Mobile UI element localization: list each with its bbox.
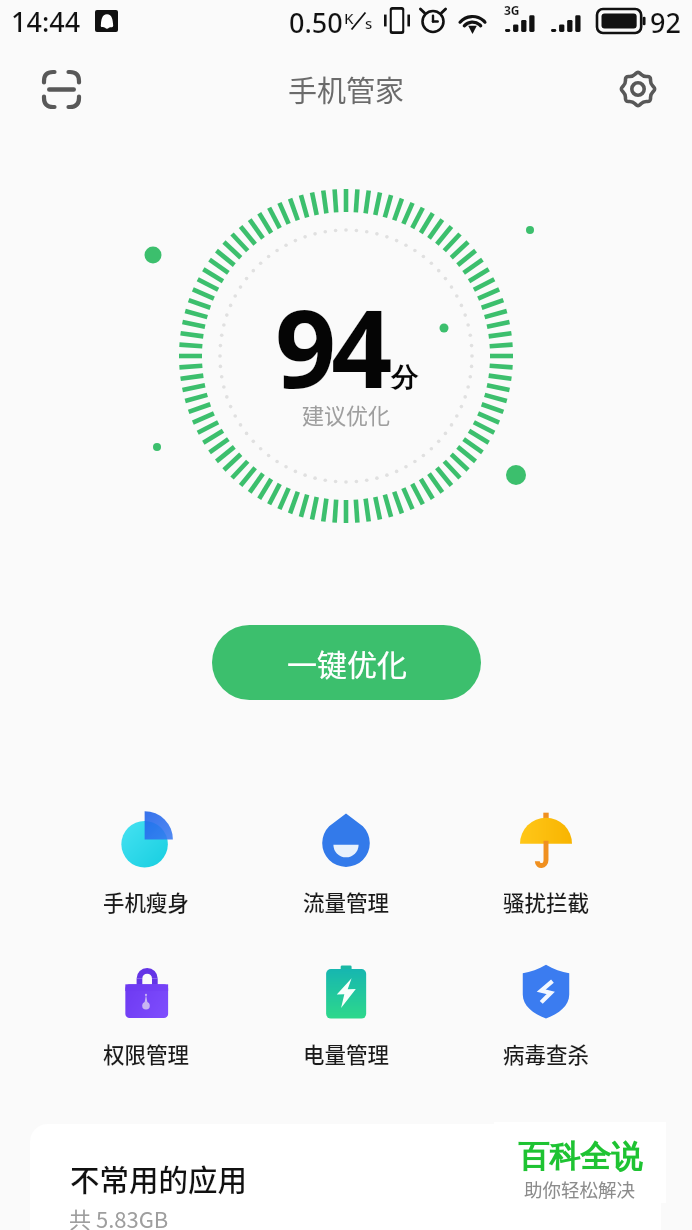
staticText: 权限管理 bbox=[103, 1038, 190, 1069]
staticText: 病毒查杀 bbox=[503, 1038, 590, 1069]
staticText: K bbox=[344, 8, 354, 28]
button[interactable]: 病毒查杀 bbox=[446, 964, 646, 1069]
staticText: 14:44 bbox=[11, 3, 81, 40]
button[interactable]: 一键优化 bbox=[212, 625, 481, 700]
button[interactable]: 权限管理 bbox=[46, 964, 246, 1069]
button[interactable]: 手机瘦身 bbox=[46, 812, 246, 917]
staticText: 电量管理 bbox=[303, 1038, 390, 1069]
staticText: 分 bbox=[391, 361, 418, 395]
staticText: 94 bbox=[275, 274, 388, 420]
button[interactable]: 百科全说 bbox=[494, 1122, 666, 1203]
staticText: 百科全说 bbox=[518, 1137, 642, 1176]
staticText: 手机瘦身 bbox=[103, 886, 190, 917]
button[interactable]: Scan bbox=[34, 62, 89, 117]
button[interactable]: 不常用的应用 bbox=[30, 1124, 661, 1230]
staticText: 骚扰拦截 bbox=[503, 886, 590, 917]
staticText: 92 bbox=[650, 4, 681, 41]
staticText: 0.50 bbox=[289, 4, 343, 41]
staticText: 流量管理 bbox=[303, 886, 390, 917]
button[interactable]: 电量管理 bbox=[246, 964, 446, 1069]
button[interactable]: Settings bbox=[611, 62, 665, 116]
staticText: 3G bbox=[504, 2, 520, 18]
staticText: s bbox=[365, 13, 373, 33]
staticText: 助你轻松解决 bbox=[524, 1176, 636, 1203]
button[interactable]: 骚扰拦截 bbox=[446, 812, 646, 917]
staticText: 不常用的应用 bbox=[70, 1157, 248, 1200]
staticText: 建议优化 bbox=[302, 398, 391, 430]
staticText: 共 5.83GB bbox=[69, 1202, 169, 1230]
staticText: 一键优化 bbox=[287, 641, 407, 684]
staticText: 手机管家 bbox=[288, 68, 405, 110]
button[interactable]: 流量管理 bbox=[246, 812, 446, 917]
